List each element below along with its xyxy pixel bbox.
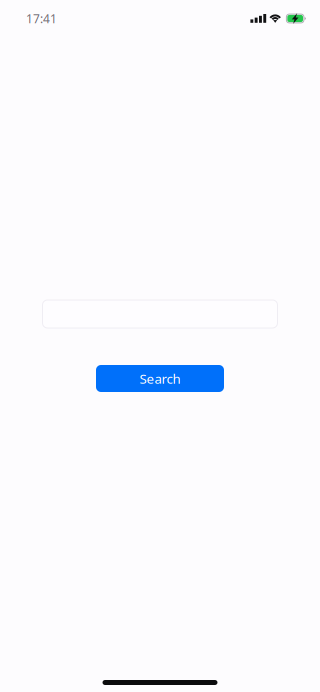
- button[interactable]: Search: [96, 365, 224, 392]
- staticText: 17:41: [26, 10, 57, 26]
- staticText: Search: [139, 370, 180, 387]
